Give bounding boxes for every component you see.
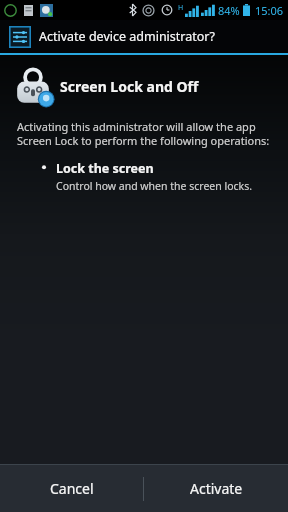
staticText: Activate device administrator? bbox=[39, 28, 215, 45]
button[interactable]: Cancel bbox=[0, 465, 143, 512]
button[interactable]: Activate bbox=[144, 465, 288, 512]
staticText: Activating this administrator will allow… bbox=[17, 119, 275, 148]
staticText: Lock the screen bbox=[56, 160, 154, 177]
staticText: Cancel bbox=[50, 479, 94, 498]
staticText: 15:06 bbox=[255, 3, 284, 18]
staticText: H bbox=[178, 3, 184, 13]
staticText: 84% bbox=[218, 3, 240, 18]
staticText: Control how and when the screen locks. bbox=[56, 179, 252, 193]
staticText: Screen Lock and Off bbox=[60, 77, 199, 96]
staticText: Activate bbox=[190, 479, 243, 498]
